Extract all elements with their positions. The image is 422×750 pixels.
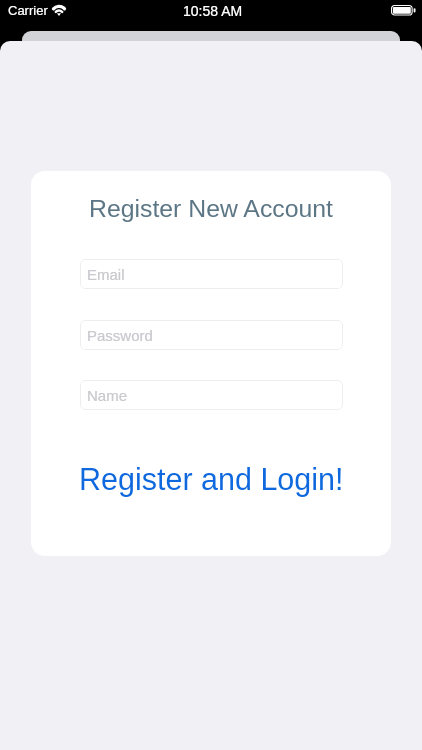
staticText: Carrier — [8, 3, 48, 18]
staticText: Password — [87, 327, 153, 344]
button[interactable]: Register and Login! — [31, 462, 391, 496]
staticText: Register and Login! — [79, 462, 344, 496]
button[interactable]: Email — [80, 259, 343, 289]
button[interactable]: Password — [80, 320, 343, 350]
button[interactable]: Name — [80, 380, 343, 410]
staticText: Name — [87, 387, 128, 404]
staticText: 10:58 AM — [183, 3, 243, 19]
staticText: Email — [87, 266, 125, 283]
staticText: Register New Account — [89, 195, 333, 223]
